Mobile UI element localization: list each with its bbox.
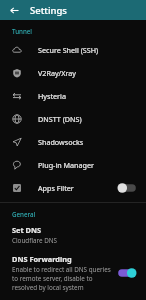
staticText: Secure Shell (SSH)	[38, 45, 99, 55]
button[interactable]: Shadowsocks	[0, 130, 146, 153]
button[interactable]: On	[117, 267, 137, 279]
button[interactable]: Set DNS	[0, 221, 146, 250]
button[interactable]: Plug-in Manager	[0, 153, 146, 176]
button[interactable]: Off	[117, 182, 137, 194]
button[interactable]: Hysteria	[0, 84, 146, 107]
staticText: Plug-in Manager	[38, 160, 95, 170]
button[interactable]: Apps Filter	[0, 176, 146, 199]
staticText: Set DNS	[12, 225, 42, 235]
staticText: General	[12, 210, 36, 218]
button[interactable]: Secure Shell (SSH)	[0, 38, 146, 61]
staticText: DNS Forwarding	[12, 254, 72, 264]
staticText: Hysteria	[38, 91, 66, 101]
staticText: Tunnel	[12, 27, 33, 35]
staticText: Apps Filter	[38, 183, 74, 193]
staticText: Enable to redirect all DNS queries to re…	[12, 265, 111, 292]
button[interactable]: DNSTT (DNS)	[0, 107, 146, 130]
staticText: Cloudflare DNS	[12, 236, 58, 245]
staticText: V2Ray/Xray	[38, 68, 77, 78]
button[interactable]: V2Ray/Xray	[0, 61, 146, 84]
button[interactable]: DNS Forwarding	[0, 250, 146, 297]
staticText: Settings	[30, 4, 67, 17]
staticText: Shadowsocks	[38, 137, 84, 147]
staticText: DNSTT (DNS)	[38, 114, 82, 124]
button[interactable]: Back	[6, 2, 22, 18]
